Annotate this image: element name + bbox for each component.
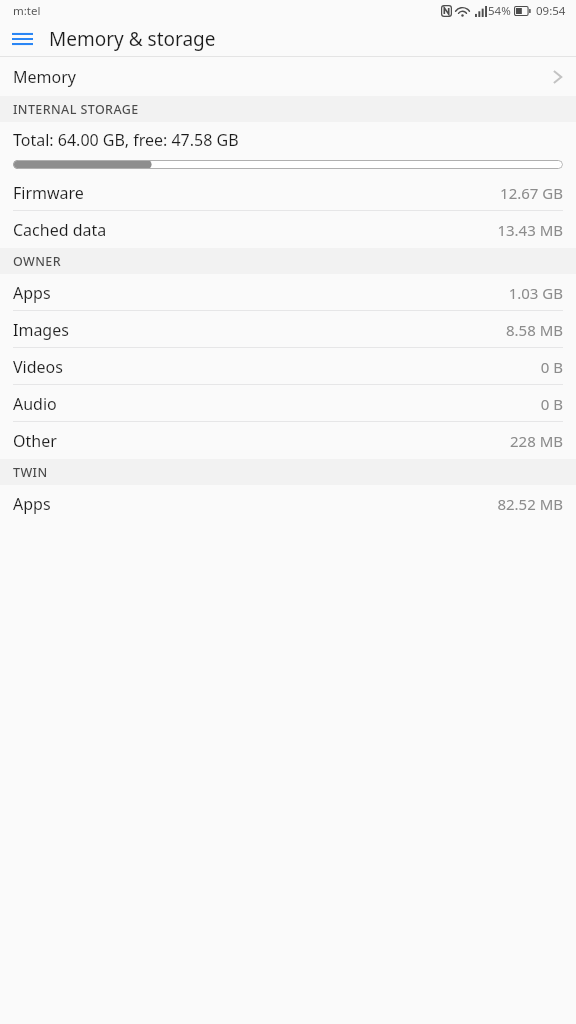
staticText: 82.52 MB: [497, 494, 563, 514]
staticText: Other: [13, 430, 57, 452]
staticText: Firmware: [13, 182, 84, 204]
staticText: Images: [13, 319, 69, 341]
button[interactable]: Open navigation menu: [8, 25, 36, 53]
button[interactable]: Memory: [0, 57, 576, 96]
button[interactable]: Apps: [0, 274, 576, 311]
button[interactable]: Other: [0, 422, 576, 459]
staticText: Audio: [13, 393, 57, 415]
button[interactable]: Apps: [0, 485, 576, 522]
staticText: 0 B: [540, 394, 563, 414]
staticText: INTERNAL STORAGE: [13, 101, 139, 118]
staticText: Cached data: [13, 219, 107, 241]
staticText: OWNER: [13, 253, 62, 270]
staticText: 12.67 GB: [500, 183, 563, 203]
staticText: Videos: [13, 356, 63, 378]
staticText: 54%: [488, 3, 511, 19]
staticText: 0 B: [540, 357, 563, 377]
staticText: Memory: [13, 66, 76, 88]
staticText: m:tel: [13, 3, 41, 19]
staticText: 8.58 MB: [505, 320, 563, 340]
staticText: Total: 64.00 GB, free: 47.58 GB: [13, 129, 239, 151]
staticText: 09:54: [536, 3, 566, 19]
button[interactable]: Audio: [0, 385, 576, 422]
staticText: Apps: [13, 493, 51, 515]
staticText: Apps: [13, 282, 51, 304]
button[interactable]: Videos: [0, 348, 576, 385]
button[interactable]: Cached data: [0, 211, 576, 248]
staticText: Memory & storage: [49, 26, 216, 52]
staticText: TWIN: [13, 464, 48, 481]
button[interactable]: Images: [0, 311, 576, 348]
staticText: 13.43 MB: [497, 220, 563, 240]
button[interactable]: Firmware: [0, 174, 576, 211]
staticText: 1.03 GB: [508, 283, 563, 303]
staticText: 228 MB: [510, 431, 563, 451]
